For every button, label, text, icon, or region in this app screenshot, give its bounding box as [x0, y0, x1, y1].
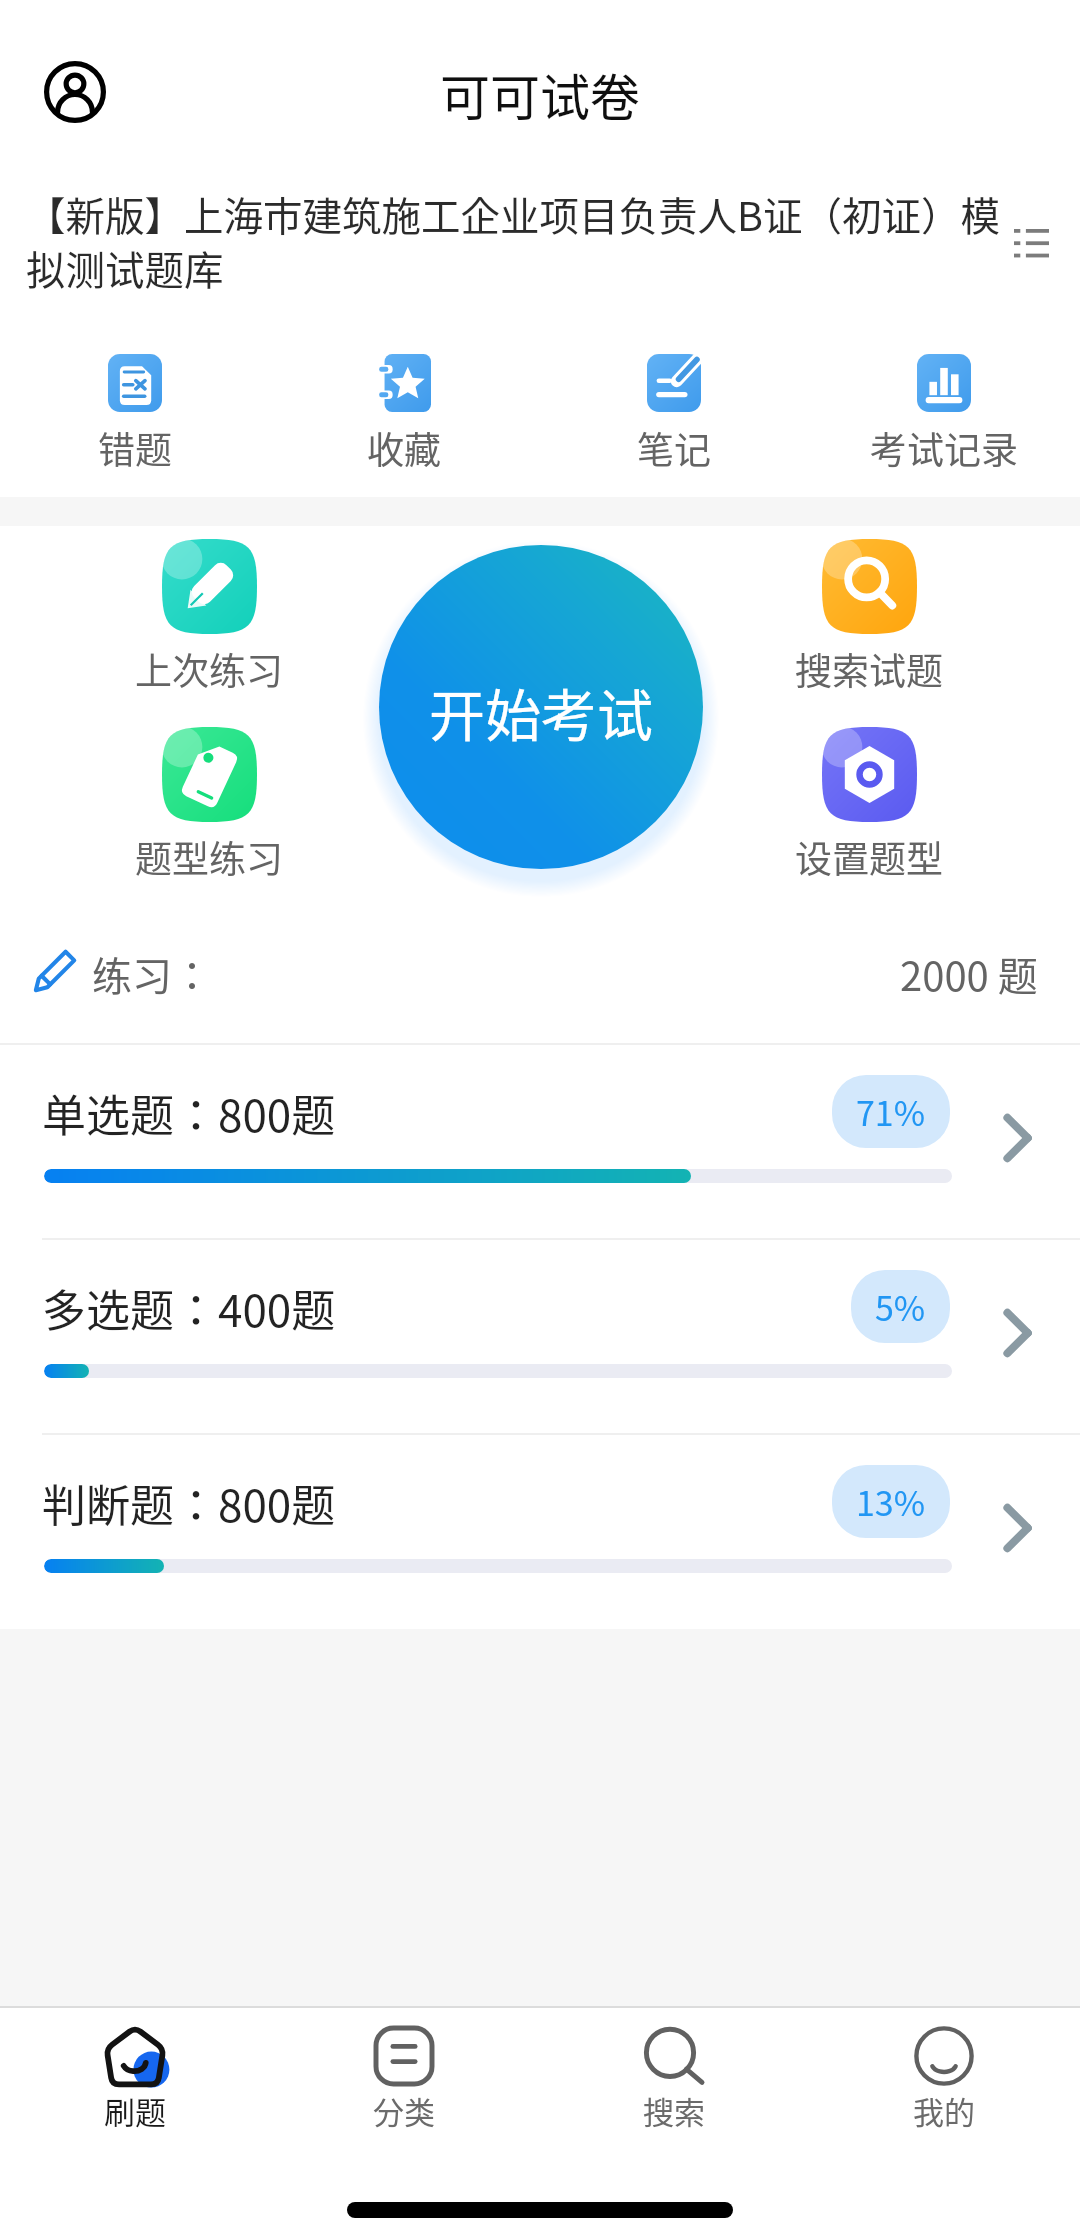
button[interactable]: Profile [30, 47, 120, 137]
button[interactable]: 题型练习 [109, 727, 309, 870]
button[interactable]: 设置题型 [769, 727, 969, 870]
staticText: 【新版】上海市建筑施工企业项目负责人B证（初证）模拟测试题库 [26, 185, 1008, 297]
button[interactable]: 搜索试题 [769, 539, 969, 682]
button[interactable]: 搜索 [564, 2012, 784, 2137]
button[interactable]: 笔记 [564, 338, 784, 484]
staticText: 71% [856, 1087, 926, 1136]
staticText: 题型练习 [135, 830, 283, 884]
other: Open [1002, 1115, 1032, 1161]
staticText: 搜索试题 [795, 642, 943, 696]
staticText: 错题 [98, 421, 172, 475]
button[interactable]: 开始考试 [379, 545, 703, 869]
button[interactable]: 多选题：400题 [0, 1238, 1080, 1433]
staticText: 设置题型 [795, 830, 943, 884]
staticText: 收藏 [367, 421, 441, 475]
other: Open [1002, 1505, 1032, 1551]
staticText: 考试记录 [870, 421, 1018, 475]
button[interactable]: 上次练习 [109, 539, 309, 682]
other: Open [1002, 1310, 1032, 1356]
button[interactable]: 我的 [834, 2012, 1054, 2137]
button[interactable]: 考试记录 [834, 338, 1054, 484]
button[interactable]: 单选题：800题 [0, 1043, 1080, 1238]
staticText: 我的 [913, 2088, 975, 2133]
staticText: 2000 题 [900, 945, 1038, 1003]
staticText: 练习： [92, 945, 212, 1003]
staticText: 搜索 [643, 2088, 705, 2133]
staticText: 5% [875, 1282, 926, 1331]
staticText: 开始考试 [429, 671, 653, 752]
button[interactable]: 收藏 [294, 338, 514, 484]
button[interactable]: 判断题：800题 [0, 1433, 1080, 1628]
staticText: 判断题：800题 [42, 1471, 336, 1535]
button[interactable]: 刷题 [25, 2012, 245, 2137]
staticText: 多选题：400题 [42, 1276, 336, 1340]
staticText: 上次练习 [135, 642, 283, 696]
button[interactable]: Question list [992, 204, 1070, 282]
button[interactable]: 分类 [294, 2012, 514, 2137]
staticText: 刷题 [104, 2088, 166, 2133]
staticText: 分类 [373, 2088, 435, 2133]
staticText: 单选题：800题 [42, 1081, 336, 1145]
staticText: 可可试卷 [440, 58, 640, 130]
button[interactable]: 错题 [25, 338, 245, 484]
staticText: 笔记 [637, 421, 711, 475]
staticText: 13% [856, 1477, 926, 1526]
